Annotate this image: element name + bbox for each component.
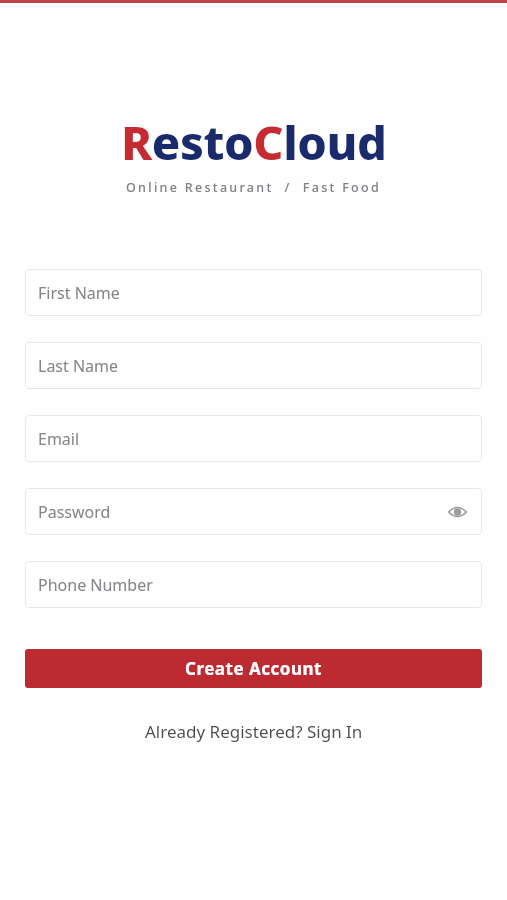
button[interactable]: Show password: [446, 501, 468, 523]
staticText: Phone Number: [38, 574, 153, 596]
staticText: Online Restaurant / Fast Food: [126, 179, 381, 196]
staticText: First Name: [38, 282, 120, 304]
button[interactable]: Email: [25, 415, 482, 462]
staticText: RestoCloud: [121, 110, 387, 174]
button[interactable]: Already Registered? Sign In: [25, 720, 482, 743]
button[interactable]: Create Account: [25, 649, 482, 688]
staticText: Email: [38, 428, 80, 450]
staticText: Password: [38, 501, 111, 523]
button[interactable]: First Name: [25, 269, 482, 316]
button[interactable]: Password: [25, 488, 482, 535]
button[interactable]: Last Name: [25, 342, 482, 389]
staticText: Last Name: [38, 355, 119, 377]
staticText: Create Account: [185, 657, 322, 680]
button[interactable]: Phone Number: [25, 561, 482, 608]
staticText: Already Registered? Sign In: [145, 720, 363, 743]
